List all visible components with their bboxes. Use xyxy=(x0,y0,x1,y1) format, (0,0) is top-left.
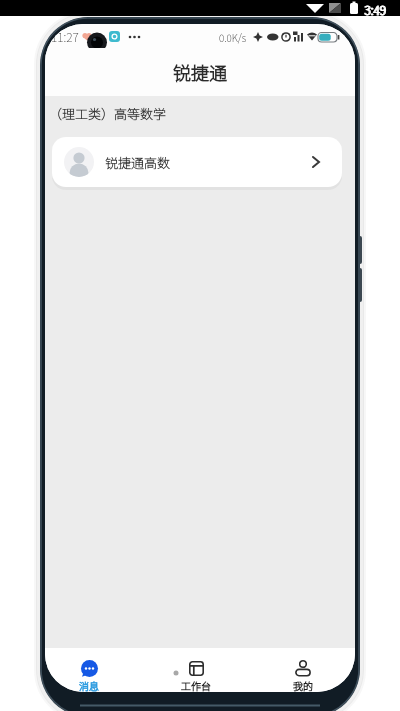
staticText: 锐捷通高数 xyxy=(105,153,171,172)
staticText: 锐捷通 xyxy=(173,59,227,85)
button[interactable]: 工作台 xyxy=(166,648,226,692)
button[interactable]: 我的 xyxy=(273,648,333,692)
staticText: 工作台 xyxy=(181,678,211,692)
staticText: 消息 xyxy=(79,678,99,692)
staticText: 0.0K/s xyxy=(219,30,247,44)
staticText: 11:27 xyxy=(51,28,79,45)
staticText: 11:27 xyxy=(51,28,79,45)
staticText: 0.0K/s xyxy=(219,30,247,44)
staticText: 锐捷通高数 xyxy=(105,153,171,172)
staticText: 锐捷通 xyxy=(173,59,227,85)
staticText: 3:49 xyxy=(364,1,386,17)
staticText: 消息 xyxy=(79,678,99,692)
button[interactable]: 锐捷通高数 xyxy=(52,137,342,187)
staticText: 我的 xyxy=(293,678,313,692)
staticText: 3:49 xyxy=(365,1,387,17)
staticText: （理工类）高等数学 xyxy=(49,104,167,123)
staticText: （理工类）高等数学 xyxy=(49,104,167,123)
staticText: 工作台 xyxy=(181,678,211,692)
button[interactable]: 消息 xyxy=(59,648,119,692)
staticText: 我的 xyxy=(293,678,313,692)
